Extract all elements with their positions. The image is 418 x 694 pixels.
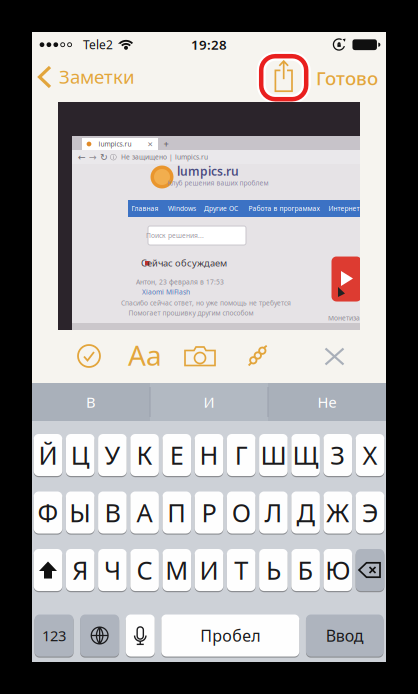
button[interactable]: Ввод: [306, 614, 383, 657]
button[interactable]: Я: [66, 548, 94, 592]
staticText: Ь: [266, 553, 281, 587]
staticText: Сейчас обсуждаем: [141, 257, 227, 269]
staticText: Xiaomi MiFlash: [142, 288, 190, 296]
button[interactable]: Ц: [66, 433, 94, 477]
staticText: Г: [235, 438, 248, 472]
staticText: Главная: [131, 204, 158, 213]
staticText: 123: [42, 626, 66, 645]
button[interactable]: Заметки: [36, 65, 136, 90]
button[interactable]: Ю: [323, 548, 352, 592]
button[interactable]: З: [323, 433, 352, 477]
button[interactable]: Sketch: [247, 344, 268, 367]
button[interactable]: И: [195, 548, 223, 592]
button[interactable]: В: [36, 383, 146, 421]
staticText: Другие ОС: [204, 204, 238, 213]
staticText: С: [137, 553, 153, 587]
button[interactable]: Checklist: [76, 343, 102, 369]
button[interactable]: Р: [195, 491, 223, 534]
button[interactable]: М: [162, 548, 191, 592]
staticText: Ж: [326, 496, 349, 529]
staticText: В: [86, 392, 96, 412]
button[interactable]: Camera: [183, 343, 217, 368]
button[interactable]: Share: [259, 54, 308, 101]
button[interactable]: Text styles: [128, 336, 162, 374]
button[interactable]: С: [130, 548, 159, 592]
button[interactable]: Готово: [316, 66, 378, 90]
staticText: Р: [201, 496, 216, 529]
staticText: lumpics.ru: [98, 140, 131, 148]
staticText: Готово: [316, 66, 378, 90]
button[interactable]: Shift: [34, 548, 62, 592]
staticText: Ц: [71, 438, 90, 472]
staticText: Монетизац: [328, 314, 364, 322]
button[interactable]: Щ: [291, 433, 320, 477]
button[interactable]: Не: [272, 383, 382, 421]
button[interactable]: П: [162, 491, 191, 534]
staticText: Aa: [128, 336, 162, 374]
button[interactable]: К: [130, 433, 159, 477]
button[interactable]: Ч: [98, 548, 127, 592]
button[interactable]: В: [98, 491, 127, 534]
staticText: Не: [317, 392, 336, 412]
button[interactable]: Г: [227, 433, 255, 477]
button[interactable]: Ы: [66, 491, 94, 534]
button[interactable]: Т: [227, 548, 255, 592]
staticText: Ч: [104, 553, 121, 587]
staticText: Щ: [293, 438, 319, 472]
staticText: Помогает прошивку другим способом: [128, 309, 253, 317]
staticText: Ы: [69, 496, 91, 529]
button[interactable]: И: [154, 383, 264, 421]
button[interactable]: А: [130, 491, 159, 534]
button[interactable]: Ф: [34, 491, 62, 534]
staticText: Tele2: [83, 36, 113, 52]
staticText: Д: [297, 496, 315, 529]
button[interactable]: Next keyboard: [80, 614, 119, 657]
staticText: Спасибо сейчас ответ, но уже помощь не т…: [121, 299, 291, 307]
staticText: Ю: [325, 553, 350, 587]
staticText: Й: [38, 438, 57, 472]
button[interactable]: Н: [195, 433, 223, 477]
button[interactable]: Б: [291, 548, 320, 592]
staticText: Интернет: [328, 204, 359, 213]
staticText: Б: [298, 553, 314, 587]
staticText: lumpics.ru: [177, 163, 239, 179]
button[interactable]: 123: [35, 614, 74, 657]
staticText: ↻: [100, 152, 108, 162]
staticText: Windows: [168, 204, 196, 213]
staticText: П: [167, 496, 186, 529]
button[interactable]: Е: [162, 433, 191, 477]
staticText: Антон, 23 февраля в 17:53: [136, 278, 224, 286]
staticText: ×: [147, 138, 152, 150]
staticText: Е: [170, 438, 184, 472]
button[interactable]: Э: [356, 491, 384, 534]
button[interactable]: Delete: [356, 548, 384, 592]
button[interactable]: О: [227, 491, 255, 534]
button[interactable]: У: [98, 433, 127, 477]
staticText: Клуб решения ваших проблем: [167, 179, 268, 187]
button[interactable]: Д: [291, 491, 320, 534]
button[interactable]: Ж: [323, 491, 352, 534]
staticText: З: [330, 438, 345, 472]
staticText: К: [137, 438, 153, 472]
staticText: У: [104, 438, 120, 472]
staticText: Работа в программах: [248, 204, 319, 213]
button[interactable]: Ь: [259, 548, 288, 592]
button[interactable]: Л: [259, 491, 288, 534]
button[interactable]: Ш: [259, 433, 288, 477]
staticText: →: [89, 152, 97, 162]
staticText: Поиск решения...: [146, 231, 204, 240]
staticText: И: [203, 392, 214, 412]
staticText: Э: [362, 496, 378, 529]
button[interactable]: Й: [34, 433, 62, 477]
staticText: Я: [72, 553, 88, 587]
staticText: Ш: [260, 438, 286, 472]
staticText: Ф: [37, 496, 58, 529]
button[interactable]: Пробел: [161, 614, 299, 657]
staticText: О: [232, 496, 251, 529]
staticText: Пробел: [200, 625, 260, 646]
button[interactable]: Dictate: [126, 614, 155, 657]
button[interactable]: Close: [324, 347, 344, 365]
staticText: Заметки: [59, 64, 135, 89]
staticText: Л: [264, 496, 282, 529]
button[interactable]: Х: [356, 433, 384, 477]
